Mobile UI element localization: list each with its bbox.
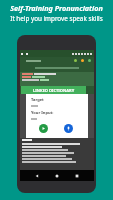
staticText: Your Input: <box>31 110 54 115</box>
button[interactable]: Back <box>33 172 41 180</box>
button[interactable]: LINKED DICTIONARY <box>21 86 86 94</box>
staticText: LINKED DICTIONARY <box>33 88 75 93</box>
staticText: It help you improve speak skills <box>10 14 103 23</box>
staticText: Target <box>31 97 44 102</box>
button[interactable]: Home <box>53 172 61 180</box>
button[interactable]: Record your voice <box>64 124 73 133</box>
staticText: Self-Training Pronunciation <box>10 3 103 13</box>
button[interactable] <box>20 57 94 64</box>
button[interactable]: Play target word <box>39 124 48 133</box>
button[interactable]: Recent apps <box>73 172 81 180</box>
